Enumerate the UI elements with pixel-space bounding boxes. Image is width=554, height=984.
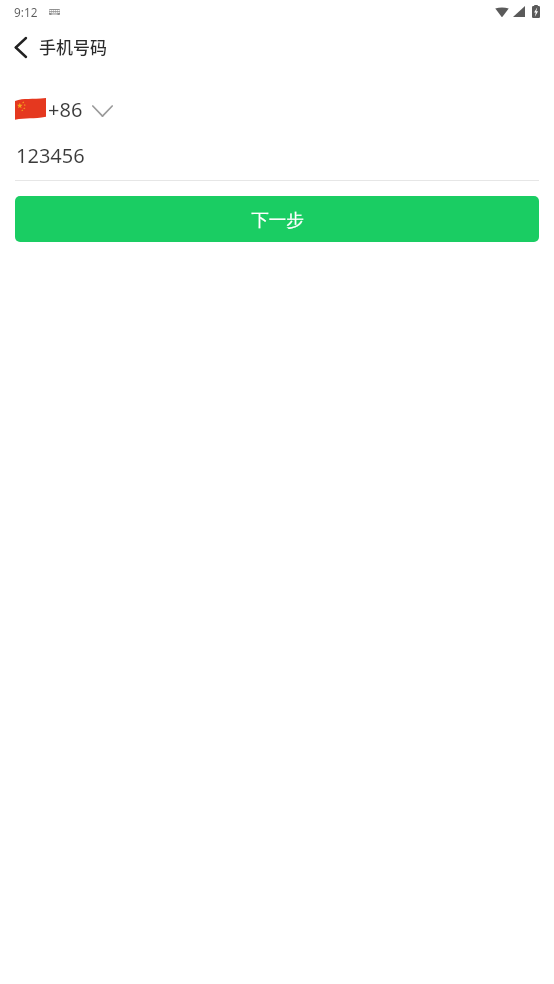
button[interactable]: +86 [15, 95, 113, 123]
staticText: +86 [48, 96, 83, 123]
staticText: 手机号码 [39, 34, 107, 59]
button[interactable]: 下一步 [15, 196, 539, 242]
staticText: 9:12 [14, 4, 38, 20]
button[interactable]: Back [0, 24, 40, 70]
staticText: 下一步 [251, 209, 304, 231]
staticText: 123456 [16, 142, 85, 169]
